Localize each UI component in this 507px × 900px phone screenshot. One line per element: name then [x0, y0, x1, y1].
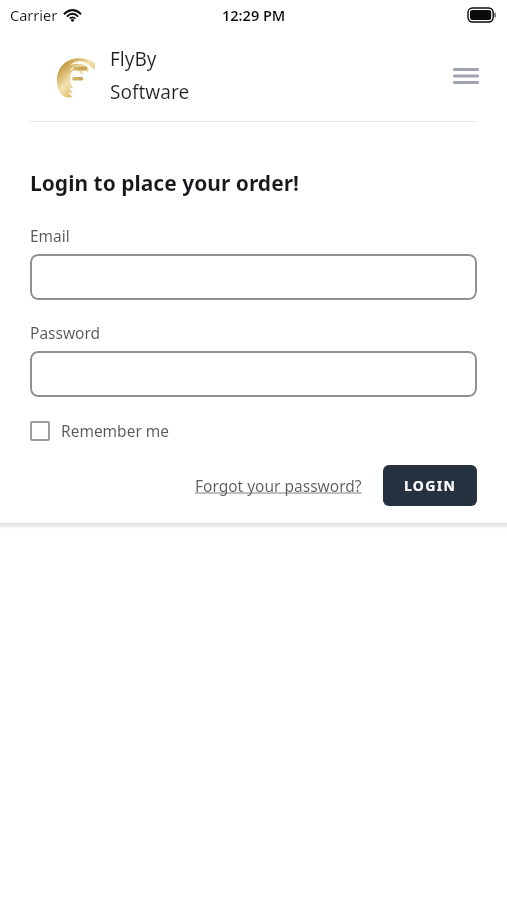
- button[interactable]: LOGIN: [383, 465, 477, 506]
- staticText: Email: [30, 225, 70, 246]
- button[interactable]: [30, 351, 477, 397]
- staticText: Remember me: [61, 420, 170, 441]
- staticText: Login to place your order!: [30, 169, 299, 198]
- button[interactable]: Open navigation menu: [444, 54, 488, 98]
- staticText: 12:29 PM: [222, 5, 286, 25]
- staticText: Software: [110, 79, 190, 105]
- button[interactable]: FlyBy: [52, 46, 190, 105]
- staticText: LOGIN: [404, 476, 457, 495]
- staticText: Forgot your password?: [195, 475, 362, 496]
- button[interactable]: Remember me: [30, 418, 170, 443]
- button[interactable]: Forgot your password?: [193, 469, 364, 502]
- button[interactable]: [30, 254, 477, 300]
- staticText: Password: [30, 322, 101, 343]
- staticText: FlyBy: [110, 46, 157, 72]
- staticText: Carrier: [10, 5, 58, 25]
